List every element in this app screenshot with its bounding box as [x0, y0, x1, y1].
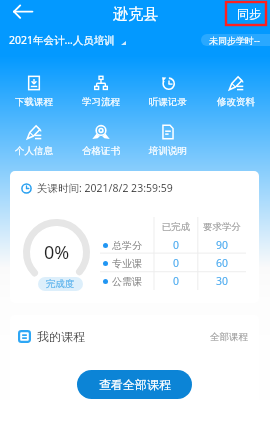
staticText: 90: [198, 238, 246, 252]
staticText: 关课时间: 2021/8/2 23:59:59: [37, 181, 173, 195]
button[interactable]: 个人信息: [0, 125, 67, 157]
staticText: 全部课程: [210, 331, 248, 343]
button[interactable]: 2021年会计…人员培训: [9, 33, 126, 47]
button[interactable]: 全部课程: [210, 331, 248, 343]
staticText: 修改资料: [217, 96, 255, 108]
button[interactable]: 查看全部课程: [77, 370, 192, 399]
staticText: 2021年会计…人员培训: [9, 33, 115, 47]
staticText: 专业课: [112, 257, 142, 270]
staticText: 合格证书: [82, 145, 120, 157]
staticText: 总学分: [112, 239, 142, 252]
staticText: 要求学分: [198, 221, 246, 233]
staticText: 公需课: [112, 275, 142, 288]
staticText: 0: [154, 256, 198, 270]
staticText: 个人信息: [15, 145, 53, 157]
staticText: 未同步学时--: [209, 34, 260, 46]
staticText: 0: [154, 238, 198, 252]
staticText: 学习流程: [82, 96, 120, 108]
staticText: 同步: [237, 6, 261, 21]
button[interactable]: 听课记录: [134, 76, 202, 108]
staticText: 30: [198, 274, 246, 288]
button[interactable]: 修改资料: [202, 76, 270, 108]
staticText: 下载课程: [15, 96, 53, 108]
button[interactable]: 下载课程: [0, 76, 67, 108]
button[interactable]: 培训说明: [134, 125, 202, 157]
button[interactable]: 合格证书: [67, 125, 134, 157]
staticText: 0%: [44, 240, 70, 265]
button[interactable]: Back: [2, 0, 30, 28]
button[interactable]: 同步: [237, 6, 261, 21]
staticText: 已完成: [154, 221, 198, 233]
staticText: 我的课程: [37, 329, 85, 344]
staticText: 培训说明: [149, 145, 187, 157]
staticText: 60: [198, 256, 246, 270]
staticText: 0: [154, 274, 198, 288]
button[interactable]: 学习流程: [67, 76, 134, 108]
staticText: 查看全部课程: [99, 377, 171, 392]
staticText: 完成度: [46, 278, 75, 290]
button[interactable]: 未同步学时--: [201, 34, 270, 46]
staticText: 听课记录: [149, 96, 187, 108]
staticText: 逊克县: [113, 5, 158, 24]
